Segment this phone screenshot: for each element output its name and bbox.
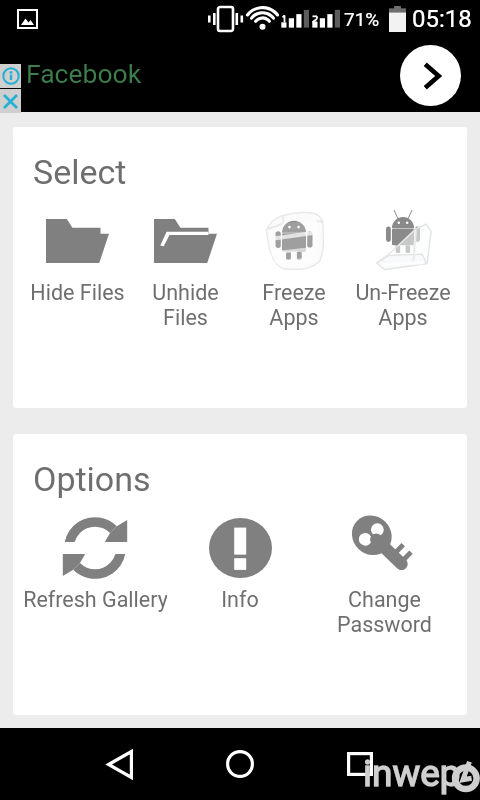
button[interactable]: Close ad	[0, 89, 21, 113]
staticText: Unhide Files	[152, 280, 219, 330]
button[interactable]: Home	[204, 728, 276, 800]
staticText: Info	[221, 587, 259, 612]
staticText: Hide Files	[30, 280, 125, 305]
staticText: Select	[33, 152, 127, 192]
staticText: Un-Freeze Apps	[355, 280, 451, 330]
button[interactable]: Ad info	[0, 64, 21, 88]
button[interactable]: Info	[167, 512, 312, 612]
button[interactable]: Refresh Gallery	[23, 512, 167, 612]
staticText: Freeze Apps	[262, 280, 326, 330]
button[interactable]: Freeze Apps	[239, 205, 348, 330]
button[interactable]: Open ad	[400, 45, 461, 106]
button[interactable]: Back	[84, 728, 156, 800]
button[interactable]: Hide Files	[23, 205, 131, 305]
button[interactable]: Unhide Files	[131, 205, 239, 330]
staticText: inwep	[363, 752, 461, 795]
staticText: Facebook	[26, 58, 142, 89]
button[interactable]: Recents	[324, 728, 396, 800]
staticText: Change Password	[337, 587, 432, 637]
staticText: 05:18	[412, 5, 472, 33]
staticText: Refresh Gallery	[23, 587, 167, 612]
staticText: Options	[33, 459, 151, 499]
staticText: 71%	[344, 8, 380, 30]
button[interactable]: Un-Freeze Apps	[348, 205, 457, 330]
button[interactable]: Change Password	[312, 512, 457, 637]
